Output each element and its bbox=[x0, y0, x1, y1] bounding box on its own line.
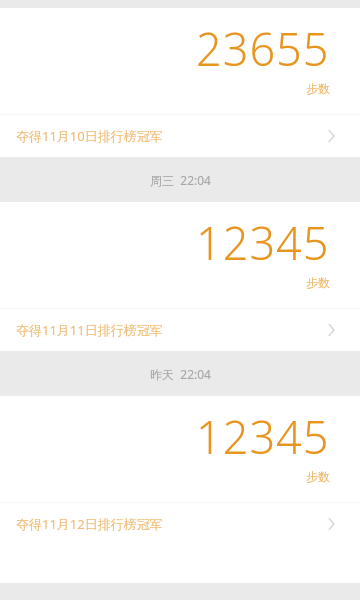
button[interactable]: 夺得11月10日排行榜冠军 bbox=[0, 115, 360, 157]
staticText: 23655 bbox=[196, 18, 330, 79]
staticText: 周三 22:04 bbox=[150, 172, 211, 188]
other: 查看排行榜 bbox=[322, 127, 340, 145]
other: 查看排行榜 bbox=[322, 321, 340, 339]
staticText: 步数 bbox=[306, 469, 330, 484]
staticText: 昨天 22:04 bbox=[150, 366, 211, 382]
staticText: 夺得11月10日排行榜冠军 bbox=[16, 127, 322, 145]
button[interactable]: 夺得11月12日排行榜冠军 bbox=[0, 503, 360, 545]
staticText: 步数 bbox=[306, 275, 330, 290]
staticText: 夺得11月11日排行榜冠军 bbox=[16, 321, 322, 339]
staticText: 夺得11月12日排行榜冠军 bbox=[16, 515, 322, 533]
other: 查看排行榜 bbox=[322, 515, 340, 533]
staticText: 步数 bbox=[306, 81, 330, 96]
staticText: 12345 bbox=[196, 212, 330, 273]
button[interactable]: 夺得11月11日排行榜冠军 bbox=[0, 309, 360, 351]
staticText: 12345 bbox=[196, 406, 330, 467]
